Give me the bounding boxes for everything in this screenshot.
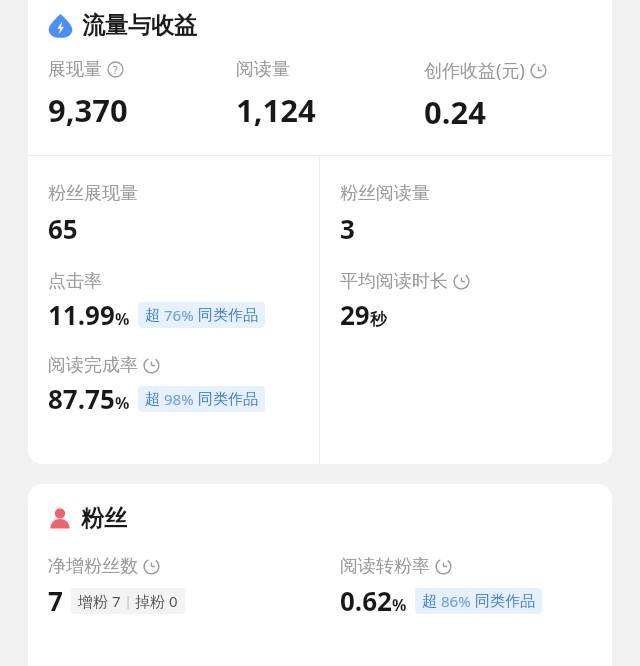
button[interactable]: 阅读量 — [236, 58, 424, 131]
button[interactable]: 粉丝 — [28, 504, 612, 533]
staticText: 增粉 7 — [78, 591, 121, 611]
staticText: 86% — [441, 591, 471, 611]
button[interactable]: 净增粉丝数 — [48, 555, 320, 618]
staticText: | — [121, 592, 135, 610]
button[interactable]: 粉丝阅读量 — [340, 182, 430, 246]
staticText: 秒 — [370, 309, 387, 330]
staticText: 点击率 — [48, 270, 102, 293]
staticText: 超 — [422, 592, 437, 611]
staticText: 阅读量 — [236, 58, 290, 81]
staticText: % — [115, 392, 130, 414]
staticText: % — [392, 594, 407, 616]
staticText: 阅读完成率 — [48, 354, 138, 377]
staticText: 粉丝 — [81, 504, 127, 533]
button[interactable]: 平均阅读时长 — [340, 270, 470, 332]
button[interactable]: 超 — [415, 588, 542, 614]
button[interactable]: 阅读转粉率 — [340, 555, 604, 618]
staticText: 0.62 — [340, 583, 392, 618]
staticText: 同类作品 — [198, 306, 258, 325]
button[interactable]: 粉丝展现量 — [48, 182, 138, 246]
staticText: 9,370 — [48, 89, 128, 131]
staticText: 29 — [340, 297, 370, 332]
staticText: 同类作品 — [198, 390, 258, 409]
staticText: 掉粉 0 — [135, 591, 178, 611]
button[interactable]: 阅读完成率 — [48, 354, 265, 416]
staticText: 粉丝展现量 — [48, 182, 138, 205]
staticText: 0.24 — [424, 91, 486, 133]
staticText: 65 — [48, 211, 78, 246]
button[interactable]: 展现量 — [48, 58, 236, 131]
staticText: 11.99 — [48, 297, 115, 332]
staticText: 阅读转粉率 — [340, 555, 430, 578]
button[interactable]: 超 — [138, 302, 265, 328]
staticText: 超 — [145, 390, 160, 409]
staticText: 1,124 — [236, 89, 316, 131]
staticText: ? — [113, 62, 118, 77]
staticText: 流量与收益 — [82, 11, 197, 40]
staticText: 87.75 — [48, 381, 115, 416]
staticText: 98% — [164, 389, 194, 409]
button[interactable]: 创作收益(元) — [424, 58, 612, 133]
staticText: 平均阅读时长 — [340, 270, 448, 293]
staticText: % — [115, 308, 130, 330]
staticText: 同类作品 — [475, 592, 535, 611]
staticText: 展现量 — [48, 58, 102, 81]
staticText: 超 — [145, 306, 160, 325]
button[interactable]: 流量与收益 — [28, 0, 612, 40]
staticText: 粉丝阅读量 — [340, 182, 430, 205]
button[interactable]: 超 — [138, 386, 265, 412]
staticText: 7 — [48, 583, 63, 618]
staticText: 创作收益(元) — [424, 58, 525, 83]
button[interactable]: 点击率 — [48, 270, 265, 332]
staticText: 3 — [340, 211, 355, 246]
staticText: 净增粉丝数 — [48, 555, 138, 578]
staticText: 76% — [164, 305, 194, 325]
